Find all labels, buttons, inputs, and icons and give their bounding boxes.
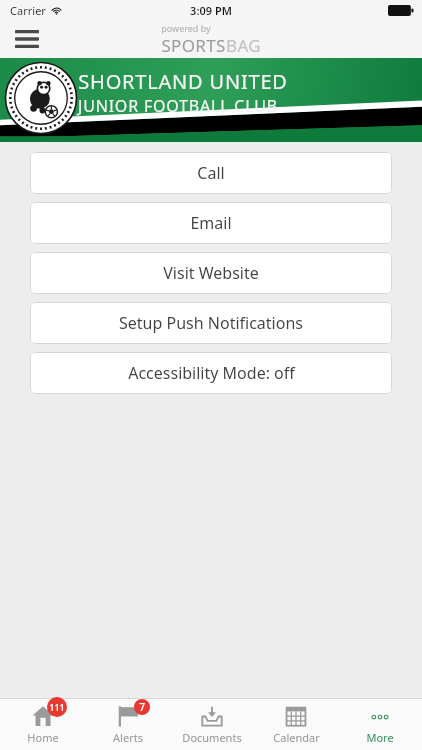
staticText: Visit Website [163, 262, 259, 284]
staticText: JUNIOR FOOTBALL CLUB [78, 95, 278, 117]
staticText: SPORTS [161, 34, 226, 57]
staticText: More [366, 730, 394, 745]
button[interactable]: 111 [0, 699, 85, 750]
staticText: SHORTLAND UNITED [78, 68, 288, 95]
button[interactable]: 7 [85, 699, 170, 750]
staticText: 3:09 PM [190, 3, 232, 18]
staticText: Home [27, 730, 59, 745]
button[interactable]: Calendar [254, 699, 338, 750]
staticText: powered by [161, 22, 211, 34]
staticText: Call [197, 162, 225, 184]
button[interactable]: Accessibility Mode: off [30, 352, 392, 394]
staticText: Carrier [10, 3, 46, 18]
button[interactable]: Call [30, 152, 392, 194]
staticText: 7 [139, 700, 145, 714]
button[interactable]: Setup Push Notifications [30, 302, 392, 344]
staticText: Setup Push Notifications [119, 312, 303, 334]
staticText: 111 [49, 701, 65, 713]
button[interactable]: Email [30, 202, 392, 244]
button[interactable]: Menu [10, 22, 44, 56]
staticText: Email [190, 212, 232, 234]
button[interactable]: Visit Website [30, 252, 392, 294]
staticText: Accessibility Mode: off [128, 362, 295, 384]
staticText: Documents [182, 730, 242, 745]
staticText: Alerts [113, 730, 143, 745]
button[interactable]: Documents [170, 699, 254, 750]
staticText: BAG [226, 34, 261, 57]
staticText: Calendar [273, 730, 320, 745]
button[interactable]: More [338, 699, 422, 750]
